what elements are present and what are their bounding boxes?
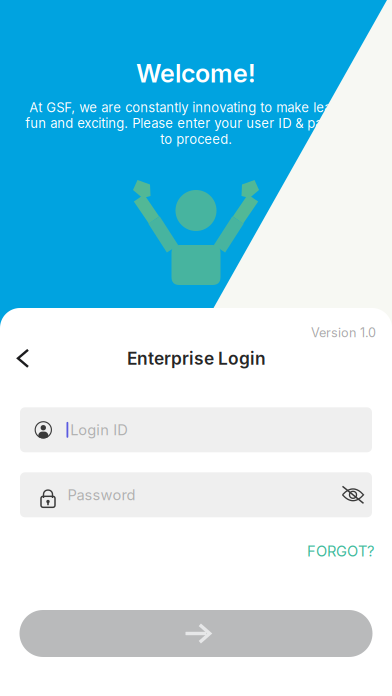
button[interactable]: Show password	[341, 485, 365, 505]
staticText: Password	[67, 486, 135, 504]
button[interactable]: Continue	[19, 610, 372, 657]
staticText: Enterprise Login	[127, 348, 266, 369]
button[interactable]: Back	[1, 340, 45, 376]
staticText: FORGOT?	[307, 542, 374, 560]
staticText: Version 1.0	[311, 325, 376, 340]
staticText: Login ID	[70, 421, 128, 439]
staticText: At GSF, we are constantly innovating to …	[25, 100, 367, 147]
staticText: Welcome!	[136, 58, 256, 89]
button[interactable]: FORGOT?	[297, 537, 392, 565]
